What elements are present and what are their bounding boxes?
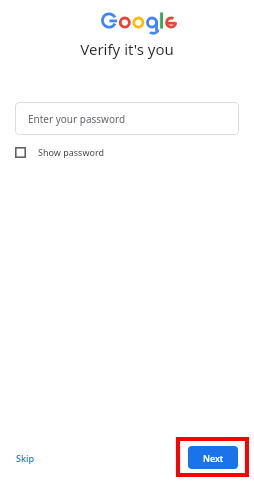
button[interactable]: Skip [10,448,40,468]
button[interactable]: Enter your password [15,102,239,135]
staticText: Skip [16,452,34,464]
staticText: Enter your password [28,112,126,126]
staticText: Verify it's you [0,39,254,59]
staticText: Show password [38,146,104,158]
button[interactable]: Show password [15,144,110,160]
button[interactable]: Next [188,446,238,469]
staticText: Next [203,452,224,464]
